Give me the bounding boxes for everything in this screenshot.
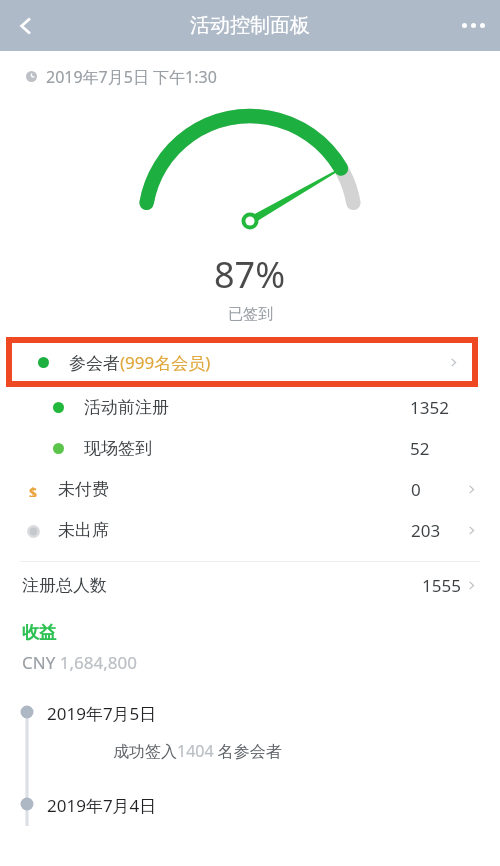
staticText: 未出席 [58, 520, 109, 541]
staticText: 2019年7月5日 [47, 702, 157, 725]
staticText: $ [29, 483, 38, 497]
staticText: 参会者(999名会员) [69, 351, 211, 374]
staticText: 2019年7月4日 [47, 794, 157, 817]
button[interactable]: 现场签到 [0, 428, 500, 469]
staticText: 未付费 [58, 479, 109, 500]
staticText: 203 [411, 519, 441, 542]
staticText: 成功签入1404 名参会者 [113, 740, 282, 762]
button[interactable]: 参会者(999名会员) [12, 343, 472, 381]
staticText: 1352 [410, 396, 449, 419]
button[interactable]: More options [446, 0, 500, 51]
button[interactable]: Back [0, 0, 52, 51]
button[interactable]: 注册总人数 [0, 562, 500, 608]
button[interactable]: 未出席 [0, 510, 500, 551]
staticText: 87% [214, 250, 286, 299]
staticText: 1555 [422, 574, 461, 597]
staticText: 活动控制面板 [190, 13, 310, 38]
staticText: 收益 [22, 622, 56, 643]
staticText: 注册总人数 [22, 575, 107, 596]
button[interactable]: $ [0, 469, 500, 510]
staticText: CNY 1,684,800 [22, 651, 137, 674]
staticText: 52 [410, 437, 430, 460]
staticText: 活动前注册 [84, 397, 169, 418]
staticText: 已签到 [228, 305, 273, 324]
staticText: 0 [411, 478, 421, 501]
button[interactable]: 活动前注册 [0, 387, 500, 428]
staticText: 现场签到 [84, 438, 152, 459]
staticText: 2019年7月5日 下午1:30 [46, 66, 217, 88]
